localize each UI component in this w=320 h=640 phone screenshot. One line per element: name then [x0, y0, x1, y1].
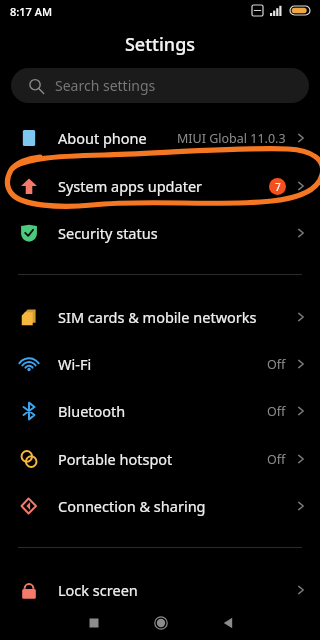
staticText: Search settings	[55, 76, 156, 95]
button[interactable]: Connection & sharing	[0, 483, 320, 529]
staticText: Off	[267, 451, 286, 468]
staticText: Bluetooth	[58, 401, 126, 421]
button[interactable]: Portable hotspot	[0, 436, 320, 482]
staticText: Wi-Fi	[58, 354, 92, 374]
button[interactable]: Lock screen	[0, 567, 320, 613]
button[interactable]: Search settings	[11, 68, 309, 103]
button[interactable]: Wi-Fi	[0, 341, 320, 387]
staticText: About phone	[58, 128, 147, 148]
staticText: SIM cards & mobile networks	[58, 307, 257, 327]
staticText: 8:17 AM	[10, 4, 53, 19]
button[interactable]: Bluetooth	[0, 388, 320, 434]
staticText: 7	[275, 180, 281, 194]
button[interactable]: Security status	[0, 210, 320, 256]
staticText: Settings	[0, 32, 320, 57]
staticText: Off	[267, 356, 286, 373]
button[interactable]: Back	[217, 612, 239, 634]
staticText: System apps updater	[58, 176, 203, 196]
staticText: Security status	[58, 223, 158, 243]
button[interactable]: About phone	[0, 115, 320, 161]
staticText: Lock screen	[58, 580, 138, 600]
button[interactable]: Recent apps	[83, 612, 105, 634]
button[interactable]: Home	[150, 612, 172, 634]
button[interactable]: System apps updater	[0, 163, 320, 209]
button[interactable]: SIM cards & mobile networks	[0, 294, 320, 340]
staticText: Portable hotspot	[58, 449, 173, 469]
staticText: Off	[267, 403, 286, 420]
staticText: Connection & sharing	[58, 496, 206, 516]
staticText: MIUI Global 11.0.3	[177, 130, 286, 147]
